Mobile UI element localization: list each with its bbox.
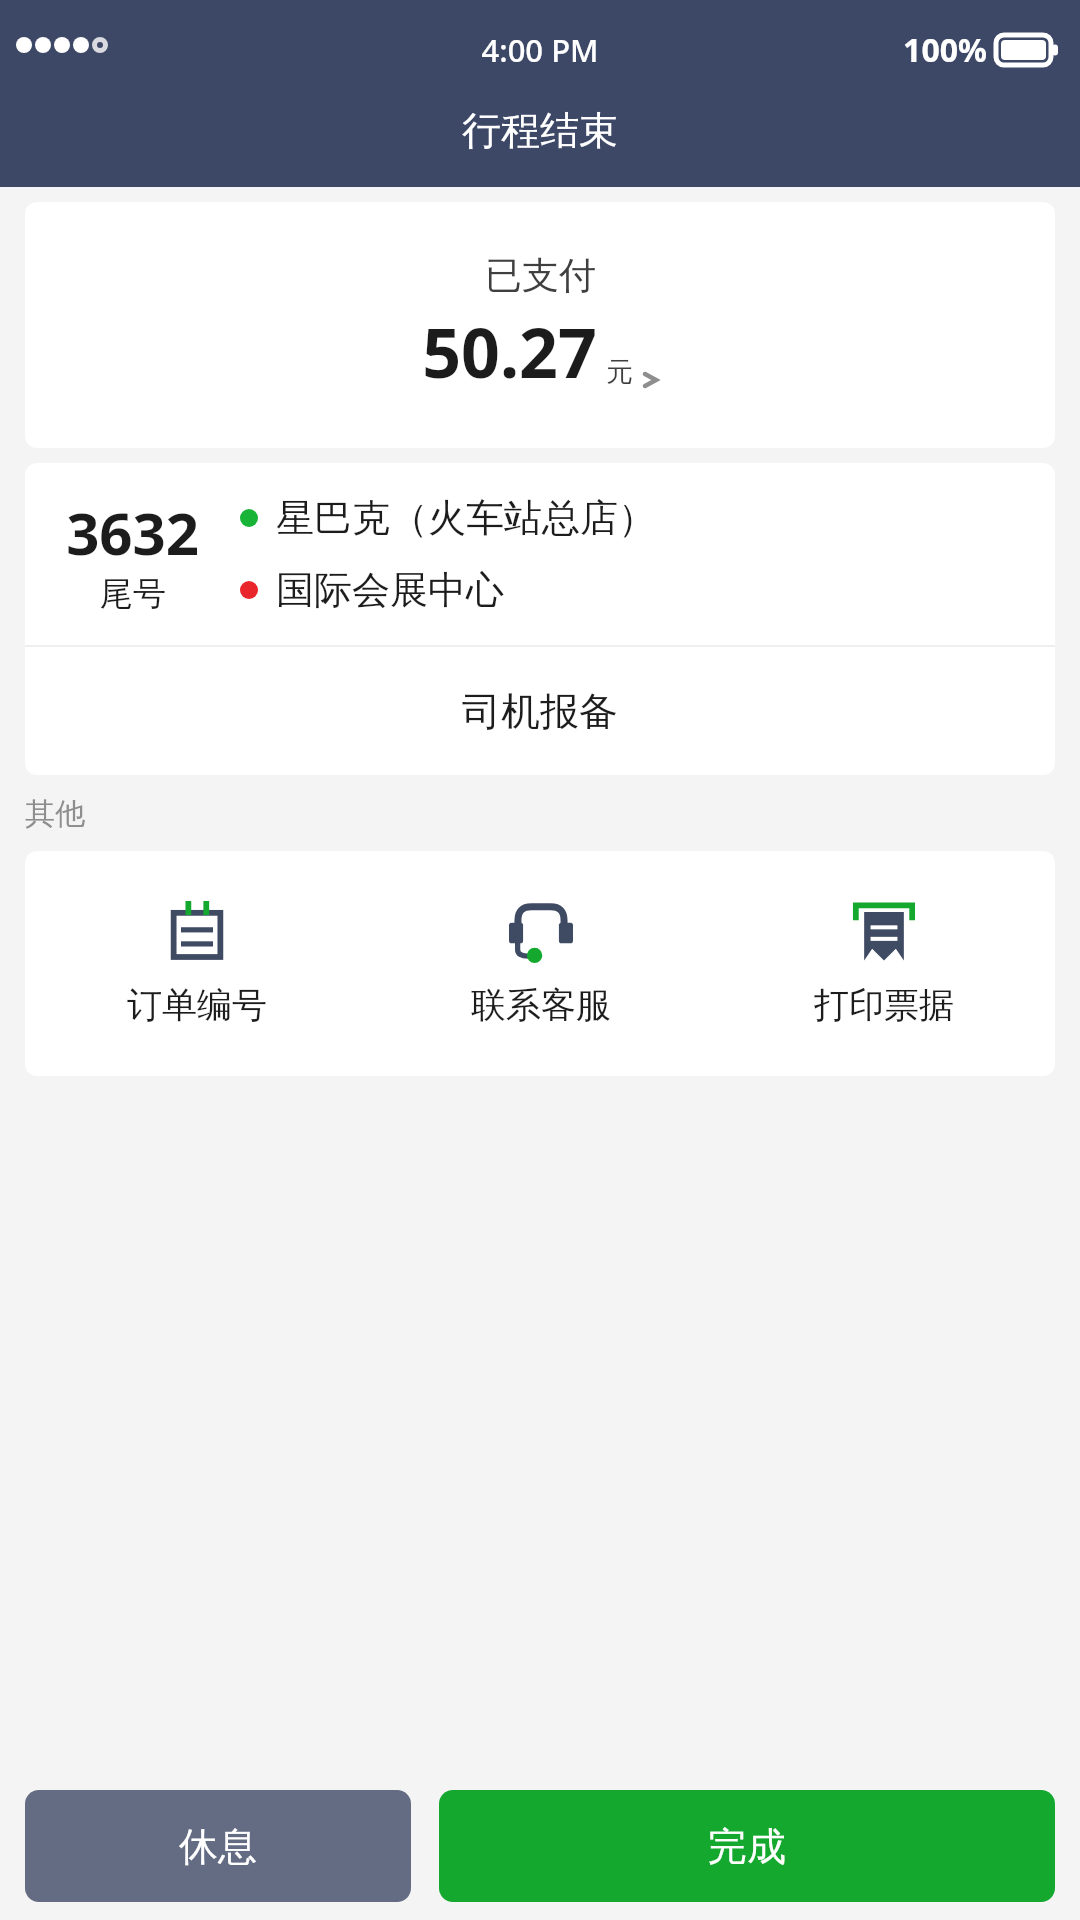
- staticText: 星巴克（火车站总店）: [276, 494, 656, 542]
- staticText: 尾号: [100, 573, 166, 615]
- button[interactable]: 3632: [25, 463, 1055, 645]
- staticText: 100%: [903, 28, 987, 72]
- staticText: 4:00 PM: [481, 29, 599, 71]
- staticText: 行程结束: [462, 106, 618, 155]
- other: 联系客服: [509, 901, 573, 965]
- staticText: 50.27: [422, 305, 597, 398]
- button[interactable]: 联系客服: [369, 851, 712, 1076]
- button[interactable]: 已支付: [25, 202, 1055, 448]
- button[interactable]: 完成: [439, 1790, 1055, 1902]
- button[interactable]: 订单编号: [25, 851, 369, 1076]
- staticText: 国际会展中心: [276, 566, 504, 614]
- staticText: 打印票据: [814, 983, 954, 1027]
- staticText: 3632: [66, 493, 199, 572]
- button[interactable]: 司机报备: [25, 647, 1055, 775]
- staticText: 其他: [25, 795, 85, 833]
- staticText: 联系客服: [471, 983, 611, 1027]
- other: 打印票据: [852, 901, 916, 965]
- button[interactable]: 打印票据: [712, 851, 1055, 1076]
- staticText: 已支付: [485, 252, 596, 299]
- other: 订单编号: [165, 901, 229, 965]
- staticText: 元: [606, 355, 633, 389]
- staticText: 订单编号: [127, 983, 267, 1027]
- staticText: 司机报备: [462, 687, 618, 736]
- staticText: 完成: [708, 1822, 786, 1871]
- button[interactable]: 休息: [25, 1790, 411, 1902]
- staticText: 休息: [179, 1822, 257, 1871]
